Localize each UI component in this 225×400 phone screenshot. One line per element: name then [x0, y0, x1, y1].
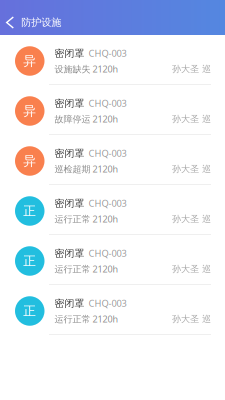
staticText: 孙大圣 巡	[172, 213, 211, 225]
button[interactable]: 防护设施	[0, 11, 71, 33]
staticText: 密闭罩	[54, 247, 84, 260]
button[interactable]: 正	[0, 285, 225, 335]
staticText: 孙大圣 巡	[172, 63, 211, 75]
button[interactable]: 异	[0, 135, 225, 185]
staticText: CHQ-003	[88, 297, 126, 310]
staticText: 密闭罩	[54, 147, 84, 160]
staticText: 密闭罩	[54, 197, 84, 210]
button[interactable]: 正	[0, 185, 225, 235]
staticText: 运行正常 2120h	[54, 213, 118, 225]
staticText: 孙大圣 巡	[172, 113, 211, 125]
staticText: 密闭罩	[54, 97, 84, 110]
button[interactable]: 正	[0, 235, 225, 285]
staticText: CHQ-003	[88, 47, 126, 60]
staticText: 密闭罩	[54, 297, 84, 310]
staticText: 正	[23, 253, 36, 269]
staticText: 孙大圣 巡	[172, 163, 211, 175]
staticText: 异	[23, 103, 36, 119]
staticText: CHQ-003	[88, 197, 126, 210]
button[interactable]: 异	[0, 85, 225, 135]
staticText: 巡检超期 2120h	[54, 163, 118, 175]
staticText: 异	[23, 53, 36, 69]
staticText: 运行正常 2120h	[54, 263, 118, 275]
staticText: CHQ-003	[88, 247, 126, 260]
staticText: 运行正常 2120h	[54, 313, 118, 325]
staticText: 密闭罩	[54, 47, 84, 60]
staticText: CHQ-003	[88, 147, 126, 160]
staticText: 设施缺失 2120h	[54, 63, 118, 75]
staticText: 异	[23, 153, 36, 169]
staticText: 孙大圣 巡	[172, 263, 211, 275]
button[interactable]: 异	[0, 35, 225, 85]
staticText: 防护设施	[21, 16, 61, 29]
staticText: 正	[23, 303, 36, 319]
staticText: 故障停运 2120h	[54, 113, 118, 125]
staticText: 孙大圣 巡	[172, 313, 211, 325]
staticText: CHQ-003	[88, 97, 126, 110]
staticText: 正	[23, 203, 36, 219]
